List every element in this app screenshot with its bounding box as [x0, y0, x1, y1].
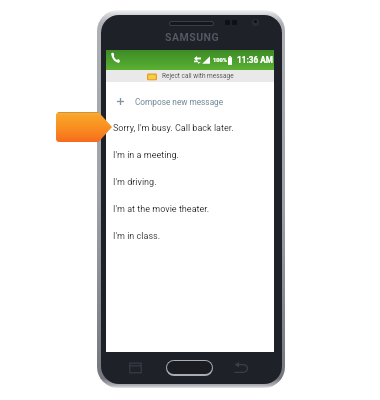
- button[interactable]: I'm in a meeting.: [106, 142, 274, 169]
- button[interactable]: Recent apps: [128, 362, 143, 374]
- staticText: I'm in a meeting.: [113, 150, 179, 161]
- button[interactable]: I'm in class.: [106, 223, 274, 250]
- staticText: 11:36 AM: [237, 55, 273, 65]
- staticText: 100%: [213, 57, 227, 64]
- button[interactable]: I'm driving.: [106, 169, 274, 196]
- button[interactable]: I'm at the movie theater.: [106, 196, 274, 223]
- staticText: Reject call with message: [162, 72, 234, 80]
- staticText: I'm in class.: [113, 231, 161, 242]
- button[interactable]: Sorry, I'm busy. Call back later.: [106, 115, 274, 142]
- button[interactable]: Home: [166, 360, 213, 376]
- staticText: Sorry, I'm busy. Call back later.: [113, 123, 234, 134]
- staticText: Compose new message: [135, 97, 224, 107]
- staticText: I'm driving.: [113, 177, 157, 188]
- staticText: SAMSUNG: [165, 31, 220, 43]
- staticText: I'm at the movie theater.: [113, 204, 210, 215]
- button[interactable]: Reject call with message: [106, 70, 274, 82]
- button[interactable]: Back: [233, 362, 249, 374]
- button[interactable]: Compose new message: [106, 91, 274, 112]
